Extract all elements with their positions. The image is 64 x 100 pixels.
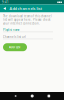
staticText: The download team of this channel list w… xyxy=(3,14,52,25)
staticText: ADD LIST xyxy=(9,45,21,49)
button[interactable]: Home xyxy=(31,94,34,97)
button[interactable]: Back xyxy=(14,94,17,97)
button[interactable]: ADD LIST xyxy=(3,43,27,51)
staticText: Channels list url xyxy=(3,35,26,39)
staticText: 9:41 xyxy=(2,0,9,4)
button[interactable]: Back xyxy=(2,6,6,10)
staticText: Add channels list xyxy=(9,6,42,11)
staticText: Playlist name xyxy=(3,28,20,32)
